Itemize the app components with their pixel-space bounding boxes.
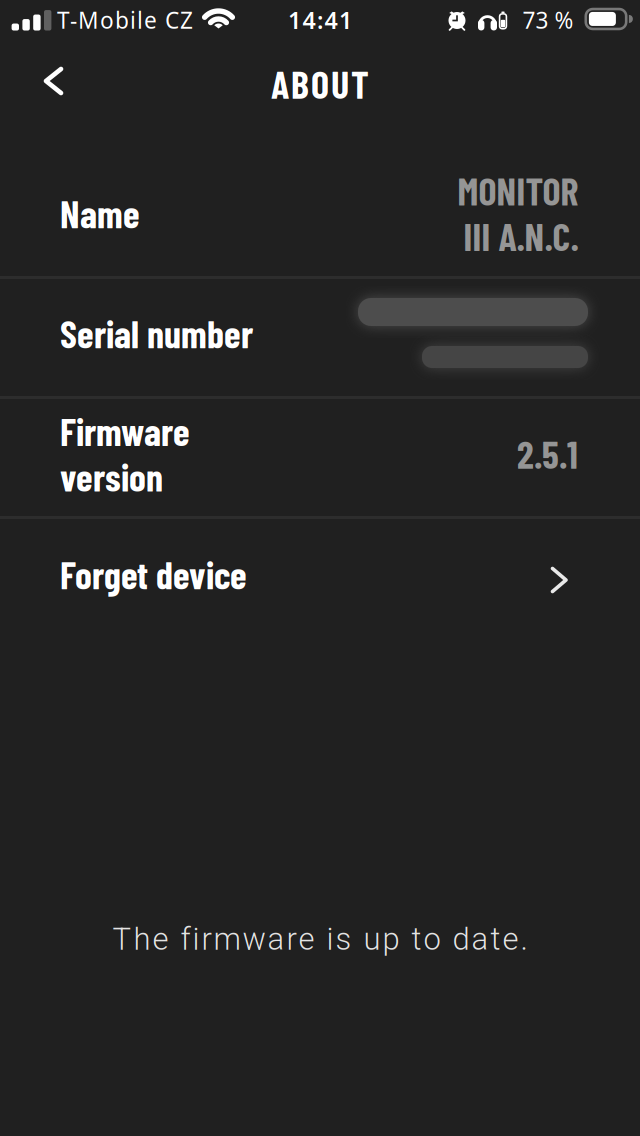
staticText: 73 % <box>522 5 573 35</box>
staticText: MONITOR III A.N.C. <box>457 167 578 259</box>
button[interactable]: Forget device <box>0 519 640 639</box>
staticText: T-Mobile CZ <box>57 5 193 35</box>
staticText: 2.5.1 <box>517 431 578 476</box>
staticText: 14:41 <box>288 4 352 36</box>
button[interactable]: Back <box>32 55 75 107</box>
staticText: Name <box>60 190 140 236</box>
staticText: ABOUT <box>271 61 369 106</box>
staticText: Serial number <box>60 310 253 356</box>
staticText: Firmware version <box>60 408 190 499</box>
staticText: The firmware is up to date. <box>112 921 527 957</box>
staticText: Forget device <box>60 551 247 597</box>
